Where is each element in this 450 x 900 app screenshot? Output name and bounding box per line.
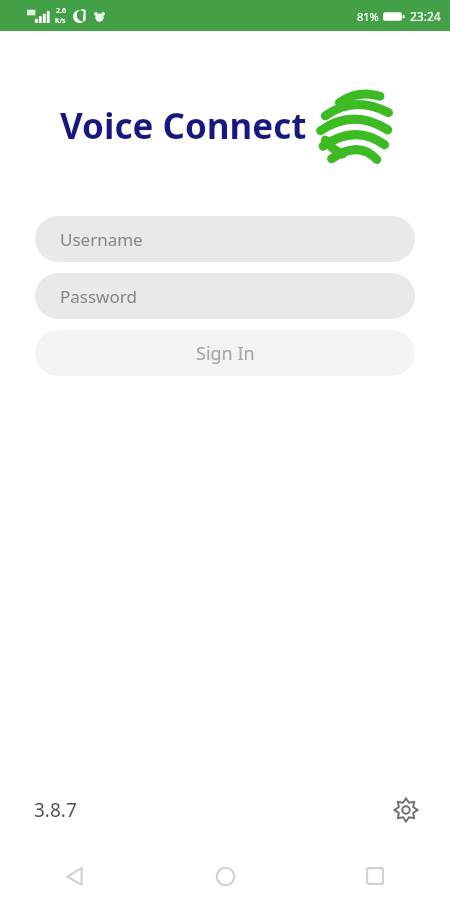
staticText: K/s (55, 16, 66, 26)
staticText: 81% (357, 9, 379, 24)
staticText: Sign In (196, 341, 255, 366)
staticText: Voice Connect (60, 102, 307, 150)
button[interactable]: Settings (386, 790, 426, 830)
button[interactable]: Sign In (35, 330, 415, 376)
staticText: 3.8.7 (34, 797, 77, 823)
staticText: 23:24 (410, 8, 441, 24)
staticText: Password (60, 285, 137, 308)
button[interactable]: Home (150, 852, 300, 900)
button[interactable]: Password (35, 273, 415, 319)
staticText: Username (60, 228, 143, 251)
button[interactable]: Recent apps (300, 852, 450, 900)
button[interactable]: Back (0, 852, 150, 900)
staticText: 2.6 (56, 6, 66, 16)
button[interactable]: Username (35, 216, 415, 262)
other: Voice Connect logo (316, 87, 394, 165)
